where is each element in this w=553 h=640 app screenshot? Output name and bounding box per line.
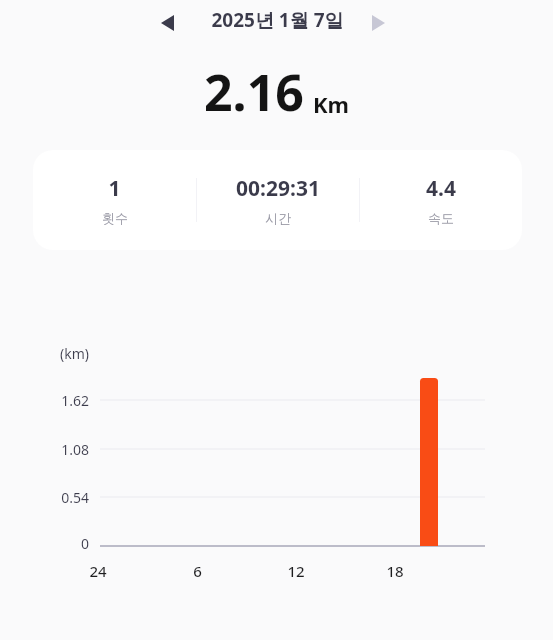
- button[interactable]: Next day: [363, 8, 393, 38]
- button[interactable]: Previous day: [152, 8, 182, 38]
- staticText: 00:29:31: [236, 174, 320, 203]
- button[interactable]: 1: [33, 150, 522, 250]
- staticText: 2.16: [204, 58, 304, 126]
- button[interactable]: 2025년 1월 7일: [203, 7, 351, 33]
- staticText: 0.54: [61, 488, 89, 507]
- staticText: 0: [80, 534, 89, 553]
- staticText: 24: [89, 561, 107, 581]
- staticText: 6: [193, 561, 202, 581]
- staticText: 1.62: [61, 391, 89, 410]
- staticText: 18: [386, 561, 404, 581]
- staticText: 2025년 1월 7일: [211, 7, 344, 33]
- staticText: 횟수: [102, 210, 128, 226]
- staticText: 시간: [265, 210, 291, 226]
- staticText: (km): [60, 344, 89, 363]
- staticText: 12: [287, 561, 305, 581]
- staticText: 4.4: [426, 174, 456, 203]
- staticText: 1.08: [61, 440, 89, 459]
- staticText: Km: [313, 89, 350, 119]
- staticText: 1: [108, 174, 121, 203]
- staticText: 속도: [428, 210, 454, 226]
